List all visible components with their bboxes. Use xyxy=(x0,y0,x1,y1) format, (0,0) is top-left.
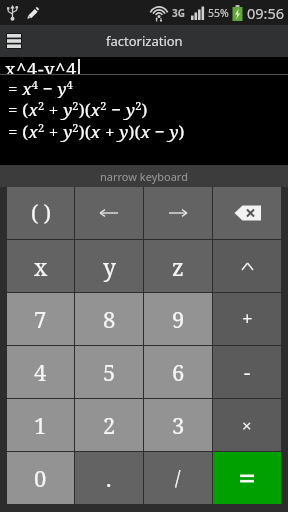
staticText: 55% xyxy=(208,6,229,20)
staticText: z xyxy=(172,251,184,282)
button[interactable] xyxy=(144,187,212,239)
staticText: = (x2 + y2)(x2 − y2) xyxy=(8,98,148,120)
staticText: . xyxy=(106,463,112,493)
staticText: factorization xyxy=(106,32,183,50)
button[interactable]: z xyxy=(144,240,212,292)
button[interactable]: × xyxy=(213,399,281,451)
button[interactable]: 5 xyxy=(75,346,143,398)
button[interactable] xyxy=(213,187,281,239)
staticText: + xyxy=(242,306,253,332)
button[interactable]: 7 xyxy=(7,293,74,345)
button[interactable]: 0 xyxy=(7,452,74,504)
button[interactable]: 8 xyxy=(75,293,143,345)
button[interactable]: - xyxy=(213,346,281,398)
staticText: × xyxy=(242,414,252,437)
staticText: / xyxy=(175,465,181,491)
button[interactable]: 4 xyxy=(7,346,74,398)
button[interactable]: 9 xyxy=(144,293,212,345)
staticText: narrow keyboard xyxy=(100,169,188,184)
staticText: 3G xyxy=(172,6,185,20)
button[interactable]: + xyxy=(213,293,281,345)
staticText: x^4-y^4 xyxy=(5,57,78,75)
staticText: 09:56 xyxy=(247,3,285,23)
button[interactable]: y xyxy=(75,240,143,292)
staticText: 9 xyxy=(172,304,185,334)
button[interactable] xyxy=(75,187,143,239)
button[interactable] xyxy=(5,32,23,50)
staticText: = (x2 + y2)(x + y)(x − y) xyxy=(8,120,185,142)
staticText: y xyxy=(103,251,116,282)
button[interactable]: . xyxy=(75,452,143,504)
staticText: 3 xyxy=(172,410,185,440)
button[interactable]: 2 xyxy=(75,399,143,451)
staticText: 4 xyxy=(34,357,47,387)
staticText: 5 xyxy=(103,357,116,387)
button[interactable]: x xyxy=(7,240,74,292)
button[interactable]: 6 xyxy=(144,346,212,398)
button[interactable]: 3 xyxy=(144,399,212,451)
button[interactable]: narrow keyboard xyxy=(0,165,288,187)
staticText: = x4 − y4 xyxy=(8,77,73,98)
staticText: 0 xyxy=(34,463,47,493)
staticText: 2 xyxy=(103,410,116,440)
staticText: x xyxy=(34,251,48,282)
staticText: ( ) xyxy=(31,199,51,228)
staticText: 6 xyxy=(172,357,185,387)
staticText: 7 xyxy=(34,304,47,334)
button[interactable] xyxy=(213,452,281,504)
staticText: 1 xyxy=(34,410,47,440)
button[interactable]: 1 xyxy=(7,399,74,451)
staticText: 8 xyxy=(103,304,116,334)
button[interactable]: ( ) xyxy=(7,187,74,239)
button[interactable]: / xyxy=(144,452,212,504)
staticText: - xyxy=(244,359,251,386)
button[interactable] xyxy=(213,240,281,292)
